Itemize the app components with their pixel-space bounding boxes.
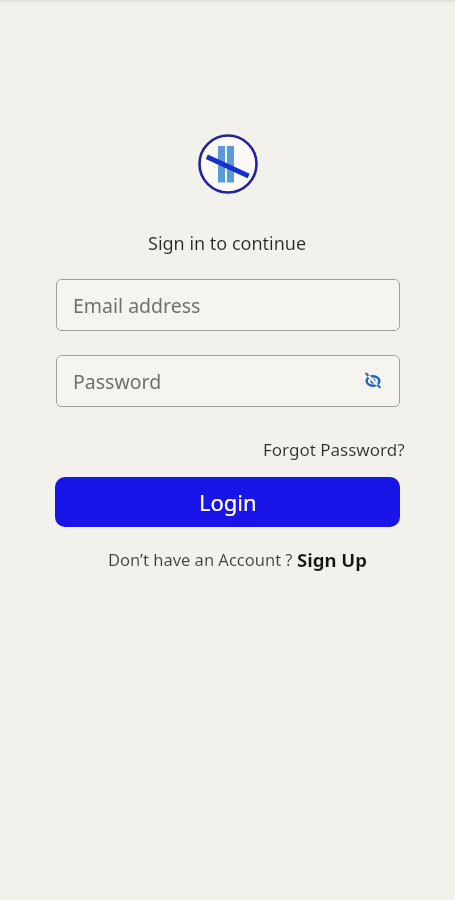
button[interactable]: Password	[56, 355, 400, 407]
staticText: Email address	[73, 292, 201, 319]
button[interactable]: Sign Up	[297, 547, 367, 571]
button[interactable]	[365, 373, 381, 389]
button[interactable]: Email address	[56, 279, 400, 331]
button[interactable]: Forgot Password?	[263, 438, 405, 461]
staticText: Login	[199, 487, 257, 517]
staticText: Don’t have an Account ?	[108, 548, 293, 570]
staticText: Password	[73, 368, 162, 395]
button[interactable]: Login	[55, 477, 400, 527]
staticText: Sign in to continue	[148, 231, 307, 256]
